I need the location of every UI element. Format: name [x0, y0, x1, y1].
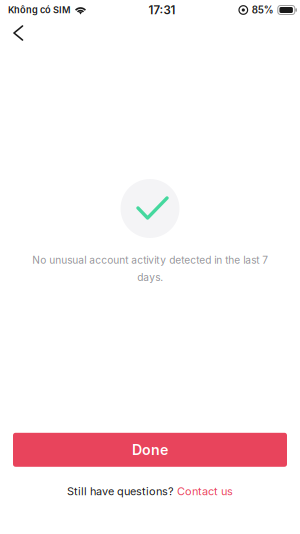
staticText: Still have questions?: [67, 485, 177, 498]
button[interactable]: Back: [0, 20, 42, 52]
staticText: No unusual account activity detected in …: [32, 254, 268, 283]
staticText: Không có SIM: [8, 4, 70, 15]
button[interactable]: Contact us: [177, 485, 233, 498]
button[interactable]: Done: [13, 433, 287, 467]
staticText: 17:31: [148, 3, 175, 17]
staticText: 85%: [252, 4, 274, 16]
staticText: Done: [132, 441, 168, 458]
staticText: Contact us: [177, 485, 233, 498]
